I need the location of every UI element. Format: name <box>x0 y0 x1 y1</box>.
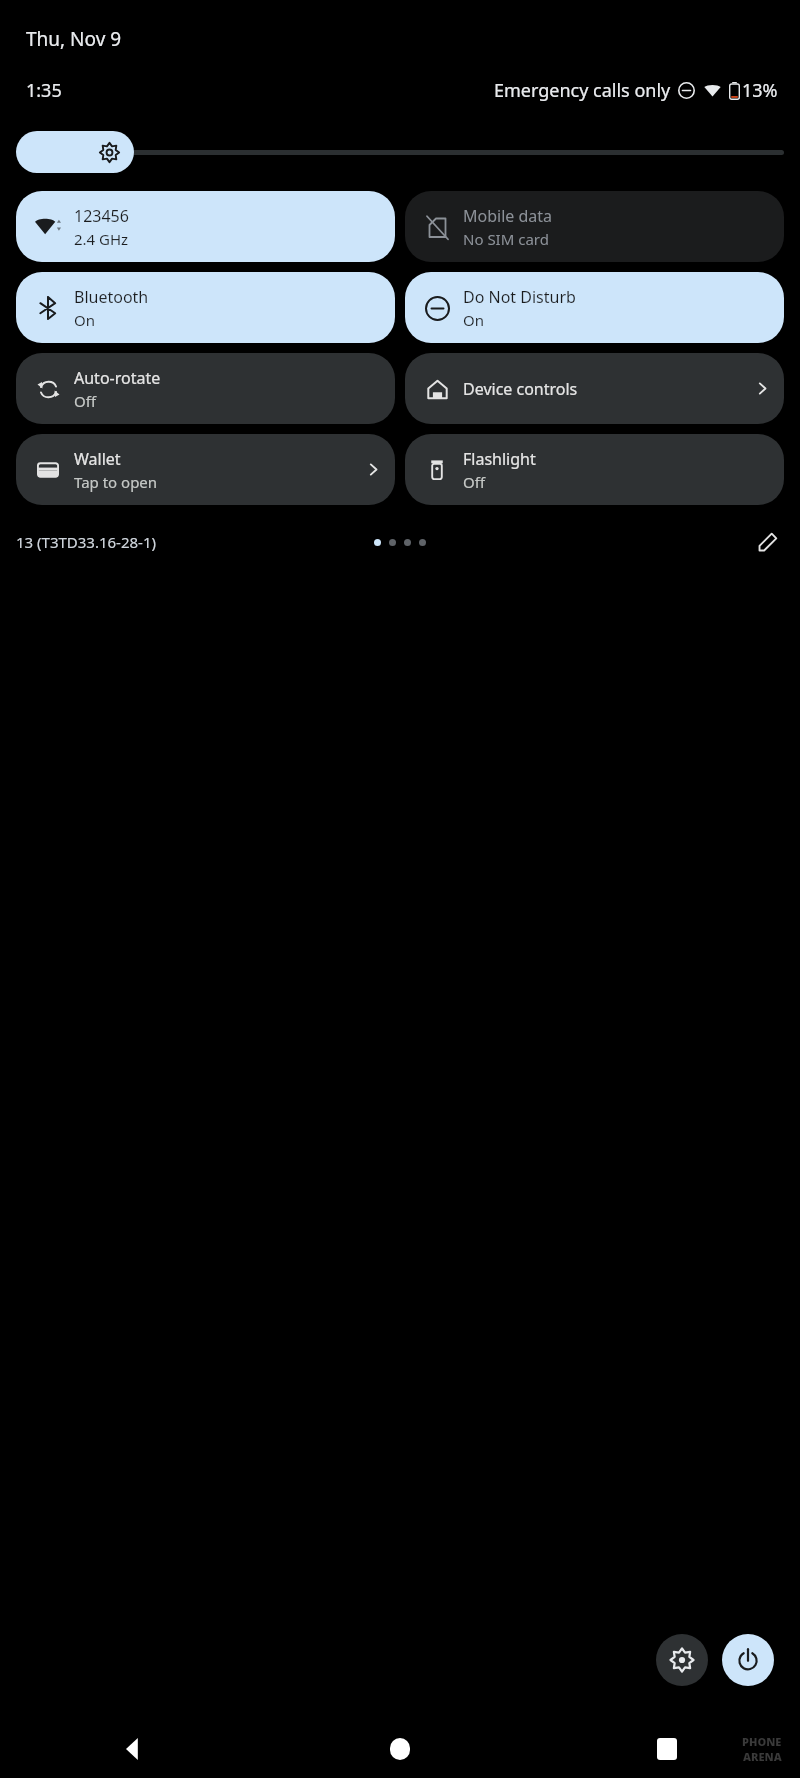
staticText: Mobile data <box>463 205 553 227</box>
button[interactable]: Flashlight <box>405 434 784 505</box>
staticText: On <box>463 310 484 330</box>
staticText: Tap to open <box>74 472 158 492</box>
staticText: On <box>74 310 95 330</box>
staticText: Flashlight <box>463 448 536 470</box>
staticText: 13 (T3TD33.16-28-1) <box>16 532 157 552</box>
staticText: ARENA <box>743 1749 782 1764</box>
staticText: Off <box>74 391 97 411</box>
staticText: Do Not Disturb <box>463 286 576 308</box>
button[interactable]: Recents <box>533 1720 800 1778</box>
staticText: Off <box>463 472 486 492</box>
staticText: 1:35 <box>26 78 62 103</box>
staticText: Wallet <box>74 448 121 470</box>
button[interactable]: Bluetooth <box>16 272 395 343</box>
staticText: PHONE <box>742 1734 782 1749</box>
staticText: 2.4 GHz <box>74 229 129 249</box>
button[interactable]: Device controls <box>405 353 784 424</box>
staticText: Thu, Nov 9 <box>26 26 122 52</box>
button[interactable]: Wallet <box>16 434 395 505</box>
staticText: Bluetooth <box>74 286 149 308</box>
staticText: No SIM card <box>463 229 549 249</box>
button[interactable]: Power <box>722 1634 774 1686</box>
staticText: Auto-rotate <box>74 367 161 389</box>
button[interactable]: Settings <box>656 1634 708 1686</box>
button[interactable]: Home <box>266 1720 533 1778</box>
button[interactable]: Back <box>0 1720 266 1778</box>
staticText: Emergency calls only <box>494 78 671 103</box>
button[interactable]: Do Not Disturb <box>405 272 784 343</box>
button[interactable]: Edit tiles <box>750 525 784 559</box>
button[interactable]: Auto-rotate <box>16 353 395 424</box>
staticText: 13% <box>742 78 778 103</box>
staticText: 123456 <box>74 205 129 227</box>
button[interactable]: 123456 <box>16 191 395 262</box>
button[interactable]: Mobile data <box>405 191 784 262</box>
button[interactable]: Brightness <box>16 131 784 173</box>
staticText: Device controls <box>463 378 578 400</box>
